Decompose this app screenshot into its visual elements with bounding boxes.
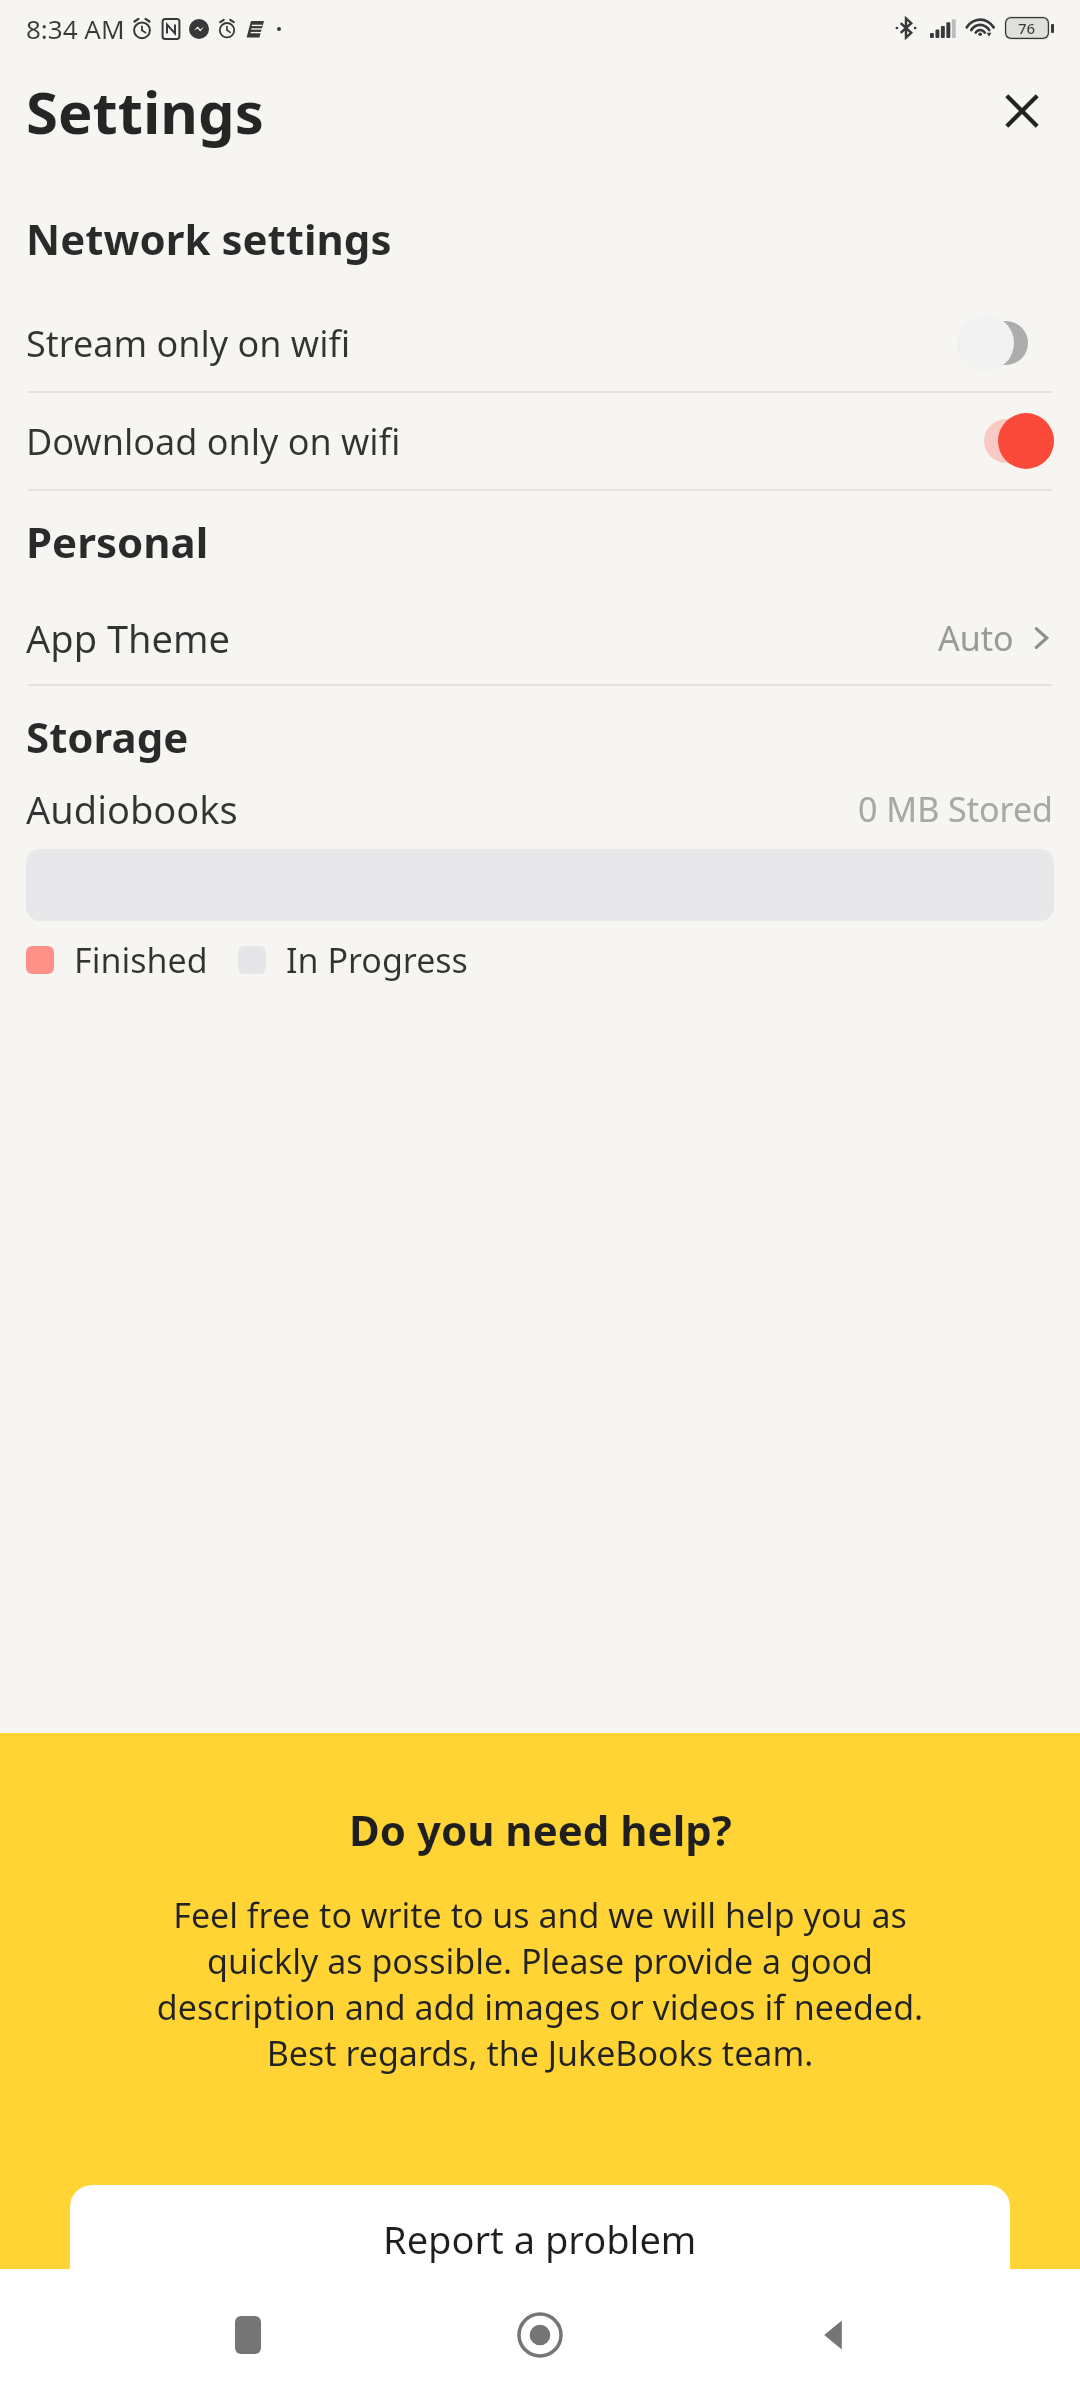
staticText: Do you need help? [349,1801,732,1858]
staticText: Finished [74,937,208,983]
staticText: Network settings [26,210,392,267]
button[interactable]: Report a problem [70,2185,1010,2269]
button[interactable]: Download only on wifi [0,393,1080,489]
staticText: Auto [938,615,1014,661]
staticText: 0 MB Stored [858,786,1054,832]
staticText: 76 [1018,18,1036,38]
staticText: 8:34 AM [26,11,125,46]
button[interactable]: Home [495,2290,585,2380]
button[interactable]: Back [788,2290,878,2380]
button[interactable]: Stream only on wifi [0,295,1080,391]
staticText: Storage [26,708,189,765]
staticText: Download only on wifi [26,417,401,466]
staticText: Settings [26,72,264,151]
staticText: Feel free to write to us and we will hel… [120,1892,960,2076]
staticText: In Progress [286,937,468,983]
staticText: Report a problem [383,2213,697,2265]
button[interactable]: Recent apps [203,2290,293,2380]
staticText: App Theme [26,612,230,664]
staticText: Stream only on wifi [26,319,351,368]
button[interactable]: Close [990,79,1054,143]
button[interactable]: App Theme [0,592,1080,684]
staticText: Audiobooks [26,783,238,835]
staticText: Personal [26,513,209,570]
